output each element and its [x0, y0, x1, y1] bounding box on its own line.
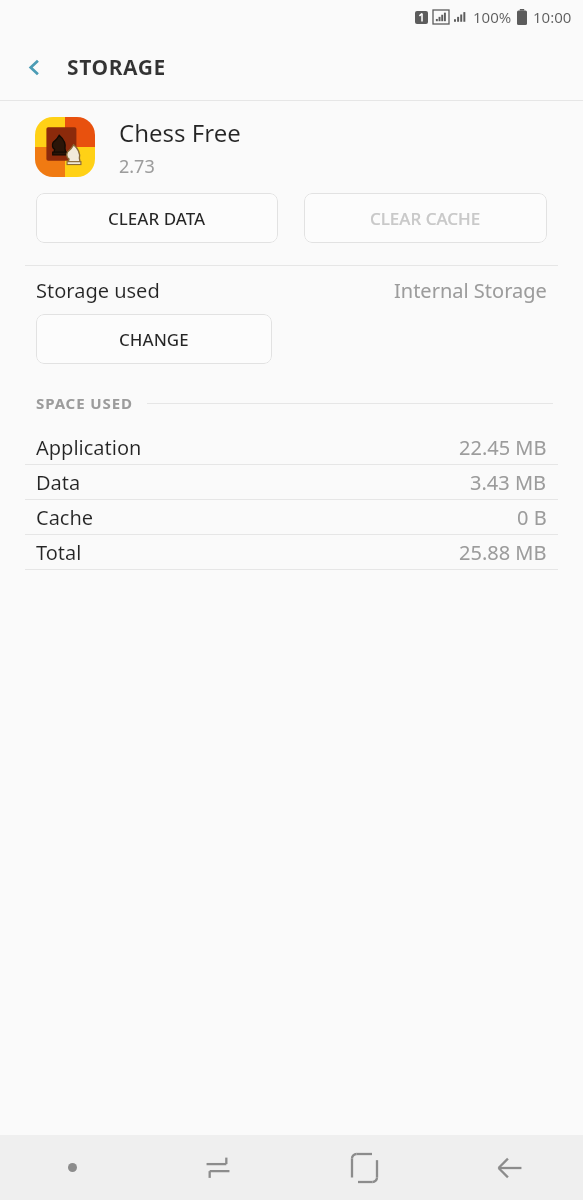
- staticText: CLEAR CACHE: [370, 207, 481, 230]
- staticText: Total: [36, 539, 82, 566]
- button[interactable]: Back: [437, 1135, 583, 1200]
- staticText: Application: [36, 434, 142, 461]
- staticText: Data: [36, 469, 81, 496]
- staticText: 100%: [473, 7, 512, 27]
- staticText: 22.45 MB: [459, 434, 547, 461]
- button[interactable]: Menu indicator: [0, 1135, 145, 1200]
- button[interactable]: Home: [291, 1135, 437, 1200]
- staticText: Storage used: [36, 277, 160, 304]
- button[interactable]: Recents: [145, 1135, 291, 1200]
- staticText: 10:00: [533, 7, 572, 27]
- staticText: STORAGE: [67, 53, 166, 82]
- staticText: CHANGE: [119, 328, 189, 351]
- button[interactable]: CLEAR CACHE: [304, 193, 547, 243]
- staticText: SPACE USED: [36, 393, 133, 413]
- staticText: Internal Storage: [394, 277, 547, 304]
- button[interactable]: Back: [14, 47, 54, 87]
- staticText: 3.43 MB: [470, 469, 547, 496]
- staticText: 25.88 MB: [459, 539, 547, 566]
- button[interactable]: CHANGE: [36, 314, 272, 364]
- staticText: 2.73: [119, 154, 155, 179]
- staticText: Chess Free: [119, 116, 241, 149]
- staticText: CLEAR DATA: [108, 207, 206, 230]
- button[interactable]: CLEAR DATA: [36, 193, 278, 243]
- staticText: 0 B: [517, 504, 547, 531]
- staticText: Cache: [36, 504, 94, 531]
